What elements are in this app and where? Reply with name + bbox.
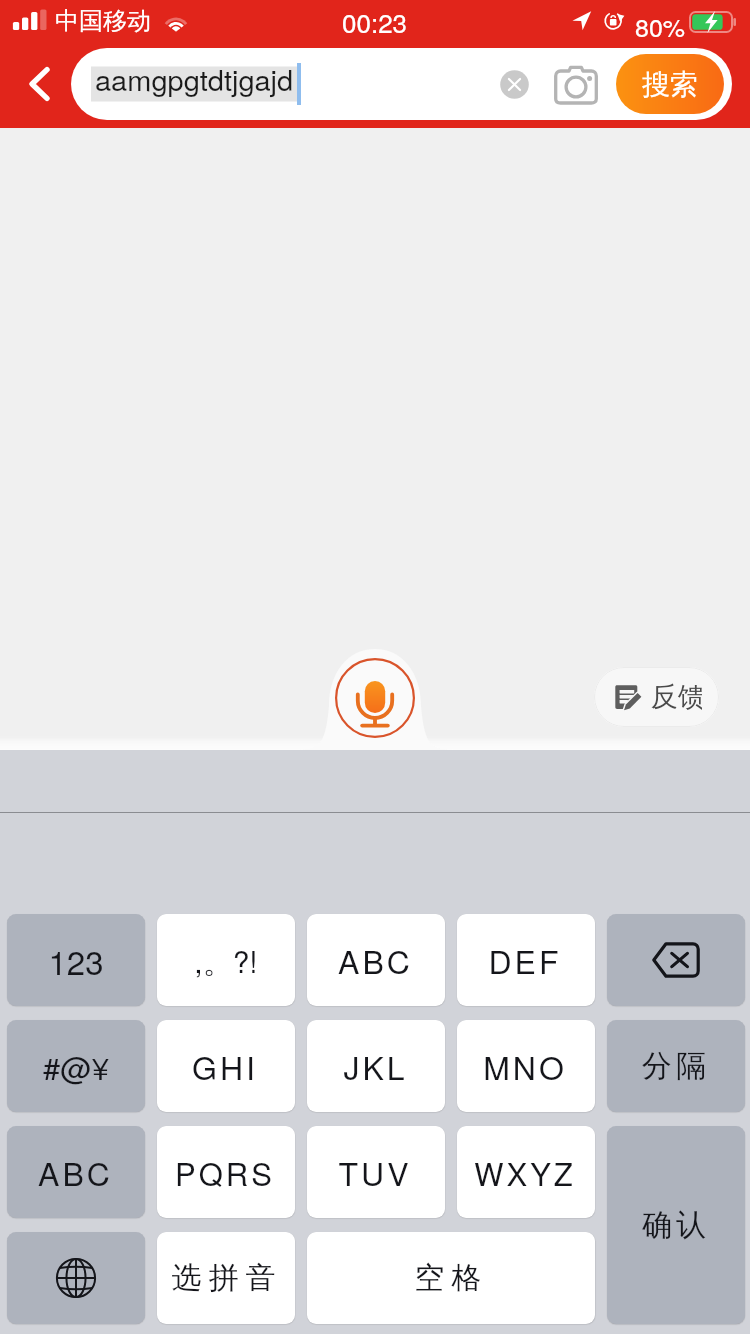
staticText: 123 <box>48 937 104 984</box>
staticText: 反馈 <box>651 680 702 714</box>
button[interactable]: Clear <box>492 62 536 106</box>
button[interactable]: WXYZ <box>457 1126 595 1218</box>
button[interactable]: Voice search <box>335 658 415 738</box>
button[interactable]: PQRS <box>157 1126 295 1218</box>
staticText: WXYZ <box>474 1150 576 1194</box>
button[interactable]: Camera search <box>548 57 604 111</box>
staticText: DEF <box>488 937 562 983</box>
button[interactable]: #@¥ <box>7 1020 145 1112</box>
button[interactable]: 选拼音 <box>157 1232 295 1324</box>
staticText: MNO <box>483 1043 567 1089</box>
staticText: TUV <box>338 1149 412 1195</box>
button[interactable]: ABC <box>307 914 445 1006</box>
staticText: aamgpgtdtjgajd <box>95 58 294 100</box>
staticText: 选拼音 <box>168 1259 279 1297</box>
staticText: ABC <box>38 1149 113 1195</box>
staticText: JKL <box>343 1043 408 1089</box>
button[interactable]: 搜索 <box>616 54 724 114</box>
staticText: PQRS <box>175 1150 275 1194</box>
staticText: 搜索 <box>642 67 698 102</box>
staticText: 中国移动 <box>55 6 151 36</box>
button[interactable]: JKL <box>307 1020 445 1112</box>
button[interactable]: ,。?! <box>157 914 295 1006</box>
button[interactable]: MNO <box>457 1020 595 1112</box>
button[interactable]: DEF <box>457 914 595 1006</box>
staticText: 00:23 <box>342 3 408 40</box>
staticText: ,。?! <box>194 939 258 982</box>
button[interactable]: 反馈 <box>594 667 719 727</box>
button[interactable]: Switch keyboard <box>7 1232 145 1324</box>
button[interactable]: 123 <box>7 914 145 1006</box>
button[interactable]: 分隔 <box>607 1020 745 1112</box>
staticText: 分隔 <box>640 1047 708 1085</box>
staticText: ABC <box>338 937 413 983</box>
button[interactable]: Delete <box>607 914 745 1006</box>
button[interactable]: TUV <box>307 1126 445 1218</box>
button[interactable]: Back <box>4 42 74 126</box>
button[interactable]: GHI <box>157 1020 295 1112</box>
button[interactable]: 空格 <box>307 1232 595 1324</box>
button[interactable]: ABC <box>7 1126 145 1218</box>
staticText: #@¥ <box>43 1044 109 1088</box>
staticText: 确认 <box>640 1206 708 1244</box>
staticText: 80% <box>635 8 686 44</box>
button[interactable]: 确认 <box>607 1126 745 1324</box>
staticText: 空格 <box>411 1259 485 1297</box>
staticText: GHI <box>192 1043 258 1089</box>
